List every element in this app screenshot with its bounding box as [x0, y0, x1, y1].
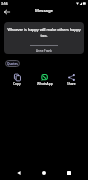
staticText: Message [35, 8, 53, 14]
staticText: Copy [13, 82, 21, 86]
button[interactable]: Quotes [5, 60, 20, 67]
button[interactable]: Whoever is happy will make others happy … [4, 22, 84, 54]
staticText: Share [67, 82, 76, 86]
staticText: 3:56 [1, 1, 8, 6]
button[interactable]: Back [2, 7, 11, 16]
button[interactable]: Recent apps [56, 166, 81, 180]
button[interactable]: Copy [3, 74, 31, 86]
staticText: Anne Frank [36, 49, 52, 53]
staticText: Whoever is happy will make others happy … [7, 27, 81, 39]
staticText: WhatsApp [37, 82, 53, 86]
button[interactable]: Share [58, 74, 85, 86]
button[interactable]: Home [31, 166, 56, 180]
button[interactable]: WhatsApp [31, 74, 58, 86]
button[interactable]: Back [7, 166, 31, 180]
staticText: Quotes [7, 62, 18, 66]
